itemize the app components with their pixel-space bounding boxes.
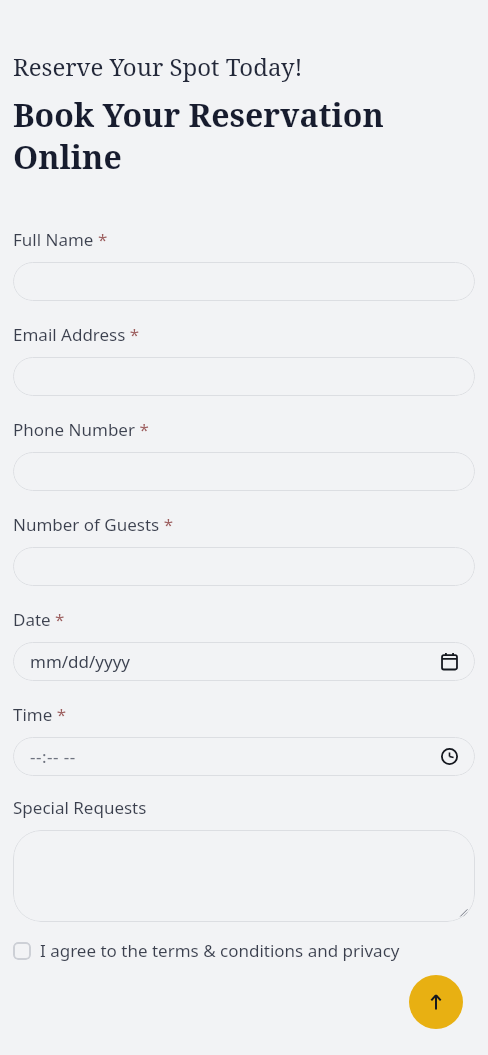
button[interactable]: --:-- -- — [13, 737, 475, 776]
staticText: Time * — [13, 703, 67, 726]
staticText: Email Address * — [13, 323, 140, 346]
staticText: Full Name * — [13, 228, 108, 251]
button[interactable]: Scroll to top — [409, 975, 463, 1029]
other: Pick date — [441, 653, 458, 670]
button[interactable]: I agree to the terms & conditions and pr… — [13, 939, 475, 962]
staticText: I agree to the terms & conditions and pr… — [40, 939, 400, 962]
other: Pick time — [441, 748, 458, 765]
button[interactable] — [13, 452, 475, 491]
button[interactable]: mm/dd/yyyy — [13, 642, 475, 681]
staticText: Book Your Reservation Online — [13, 93, 475, 178]
staticText: Number of Guests * — [13, 513, 174, 536]
button[interactable] — [13, 357, 475, 396]
staticText: mm/dd/yyyy — [30, 650, 131, 673]
staticText: Phone Number * — [13, 418, 149, 441]
button[interactable] — [13, 262, 475, 301]
button[interactable] — [13, 830, 475, 922]
button[interactable] — [13, 547, 475, 586]
staticText: --:-- -- — [30, 745, 76, 768]
staticText: Reserve Your Spot Today! — [13, 50, 303, 83]
staticText: Date * — [13, 608, 65, 631]
staticText: Special Requests — [13, 796, 147, 819]
